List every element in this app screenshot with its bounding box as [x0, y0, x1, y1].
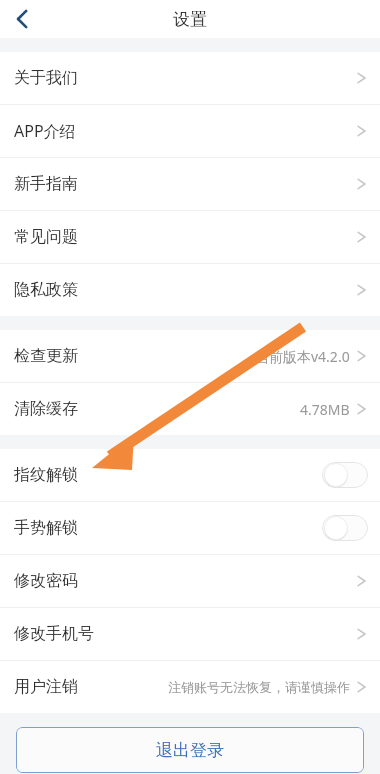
staticText: 手势解锁: [14, 518, 78, 538]
button[interactable]: 修改手机号: [0, 608, 380, 660]
staticText: 常见问题: [14, 227, 78, 247]
staticText: APP介绍: [14, 120, 76, 142]
staticText: 关于我们: [14, 68, 78, 88]
staticText: 用户注销: [14, 677, 78, 697]
button[interactable]: 指纹解锁: [0, 449, 380, 501]
button[interactable]: [322, 462, 368, 488]
button[interactable]: 关于我们: [0, 52, 380, 104]
button[interactable]: 隐私政策: [0, 264, 380, 316]
button[interactable]: 手势解锁: [0, 502, 380, 554]
staticText: 修改密码: [14, 571, 78, 591]
staticText: 注销账号无法恢复，请谨慎操作: [168, 679, 350, 695]
staticText: 新手指南: [14, 174, 78, 194]
button[interactable]: APP介绍: [0, 105, 380, 157]
button[interactable]: 常见问题: [0, 211, 380, 263]
staticText: 退出登录: [156, 740, 224, 761]
button[interactable]: 退出登录: [16, 727, 364, 773]
staticText: 4.78MB: [300, 400, 350, 419]
button[interactable]: [322, 515, 368, 541]
button[interactable]: 修改密码: [0, 555, 380, 607]
button[interactable]: 新手指南: [0, 158, 380, 210]
staticText: 指纹解锁: [14, 465, 78, 485]
button[interactable]: 检查更新: [0, 330, 380, 382]
staticText: 当前版本v4.2.0: [255, 347, 350, 366]
button[interactable]: Back: [0, 0, 44, 38]
button[interactable]: 清除缓存: [0, 383, 380, 435]
button[interactable]: 用户注销: [0, 661, 380, 713]
staticText: 隐私政策: [14, 280, 78, 300]
staticText: 检查更新: [14, 346, 78, 366]
staticText: 修改手机号: [14, 624, 94, 644]
staticText: 设置: [173, 9, 207, 30]
staticText: 清除缓存: [14, 399, 78, 419]
